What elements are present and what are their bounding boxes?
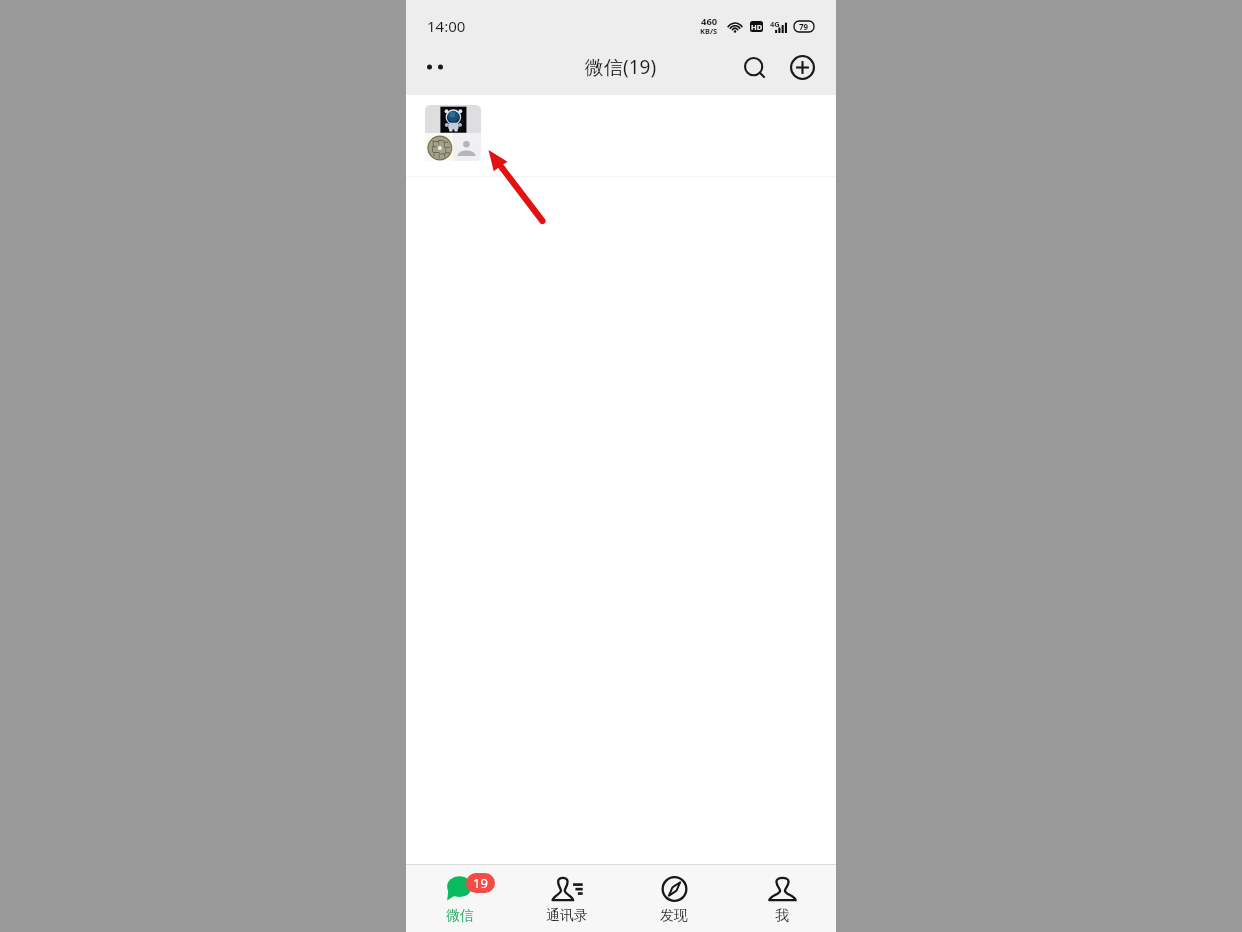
staticText: KB/S <box>700 26 718 36</box>
staticText: 460 <box>701 15 718 28</box>
button[interactable]: More options <box>427 55 451 79</box>
staticText: 发现 <box>660 907 688 925</box>
staticText: 14:00 <box>427 16 466 36</box>
button[interactable]: Group chat <box>406 95 836 176</box>
staticText: 我 <box>775 907 789 925</box>
button[interactable]: Search <box>741 52 767 82</box>
staticText: 19 <box>473 874 488 892</box>
button[interactable]: Add <box>787 52 817 82</box>
button[interactable]: 发现 <box>620 865 728 925</box>
staticText: 通讯录 <box>546 907 588 925</box>
button[interactable]: 我 <box>728 865 836 925</box>
staticText: HD <box>751 22 763 32</box>
button[interactable]: 通讯录 <box>513 865 620 925</box>
staticText: 79 <box>799 21 809 32</box>
button[interactable]: 19 <box>406 865 513 925</box>
staticText: 4G <box>770 19 780 29</box>
staticText: 微信(19) <box>585 54 657 80</box>
staticText: 微信 <box>446 907 474 925</box>
